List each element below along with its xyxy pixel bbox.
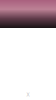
staticText: X [26, 91, 29, 98]
